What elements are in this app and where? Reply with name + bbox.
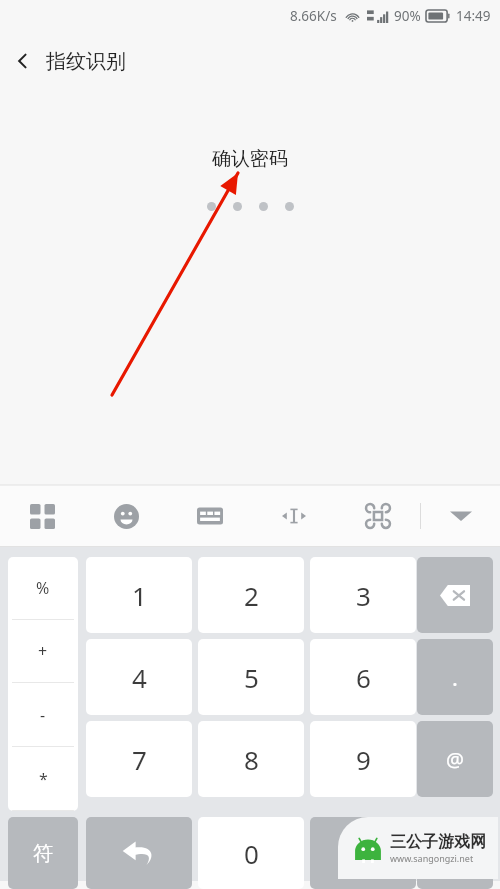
button[interactable]: % [8,557,78,619]
staticText: 指纹识别 [46,49,126,74]
button[interactable]: 4 [86,639,192,715]
button[interactable]: + [8,620,78,682]
button[interactable]: Hide keyboard [421,485,500,547]
staticText: 9 [356,742,371,777]
button[interactable]: Enter [310,817,416,889]
staticText: 4 [132,660,147,695]
staticText: 7 [132,742,147,777]
staticText: 符 [33,841,53,866]
button[interactable]: At sign [417,721,493,797]
button[interactable]: 1 [86,557,192,633]
staticText: - [40,704,46,726]
staticText: 14:49 [456,7,491,25]
staticText: 1 [132,578,147,613]
staticText: % [36,577,50,599]
button[interactable]: 9 [310,721,416,797]
staticText: + [38,640,48,662]
button[interactable]: Move cursor [252,485,336,547]
button[interactable]: 8 [198,721,304,797]
button[interactable]: 6 [310,639,416,715]
button[interactable]: 0 [198,817,304,889]
button[interactable]: Back [0,37,46,85]
button[interactable]: Backspace [417,557,493,633]
staticText: 90% [394,7,421,25]
staticText: 8.66K/s [290,7,337,25]
button[interactable]: Keyboard [168,485,252,547]
staticText: 三公子游戏网 [390,832,486,852]
button[interactable]: Apps [0,485,84,547]
button[interactable]: Symbols [8,817,78,889]
staticText: www.sangongzi.net [390,852,474,864]
staticText: 确认密码 [212,147,288,171]
button[interactable]: - [8,683,78,746]
button[interactable]: Period [417,639,493,715]
button[interactable]: 7 [86,721,192,797]
button[interactable]: 3 [310,557,416,633]
button[interactable]: * [8,747,78,810]
staticText: 6 [356,660,371,695]
staticText: 0 [244,836,259,871]
button[interactable]: Shortcuts [336,485,420,547]
button[interactable]: Emoji [84,485,168,547]
staticText: 3 [356,578,371,613]
button[interactable]: 2 [198,557,304,633]
staticText: 8 [244,742,259,777]
staticText: * [39,768,48,790]
staticText: @ [446,746,464,773]
button[interactable]: 5 [198,639,304,715]
button[interactable]: More [417,817,493,889]
staticText: 2 [244,578,259,613]
button[interactable]: Undo [86,817,192,889]
staticText: 5 [244,660,259,695]
staticText: . [452,662,458,692]
